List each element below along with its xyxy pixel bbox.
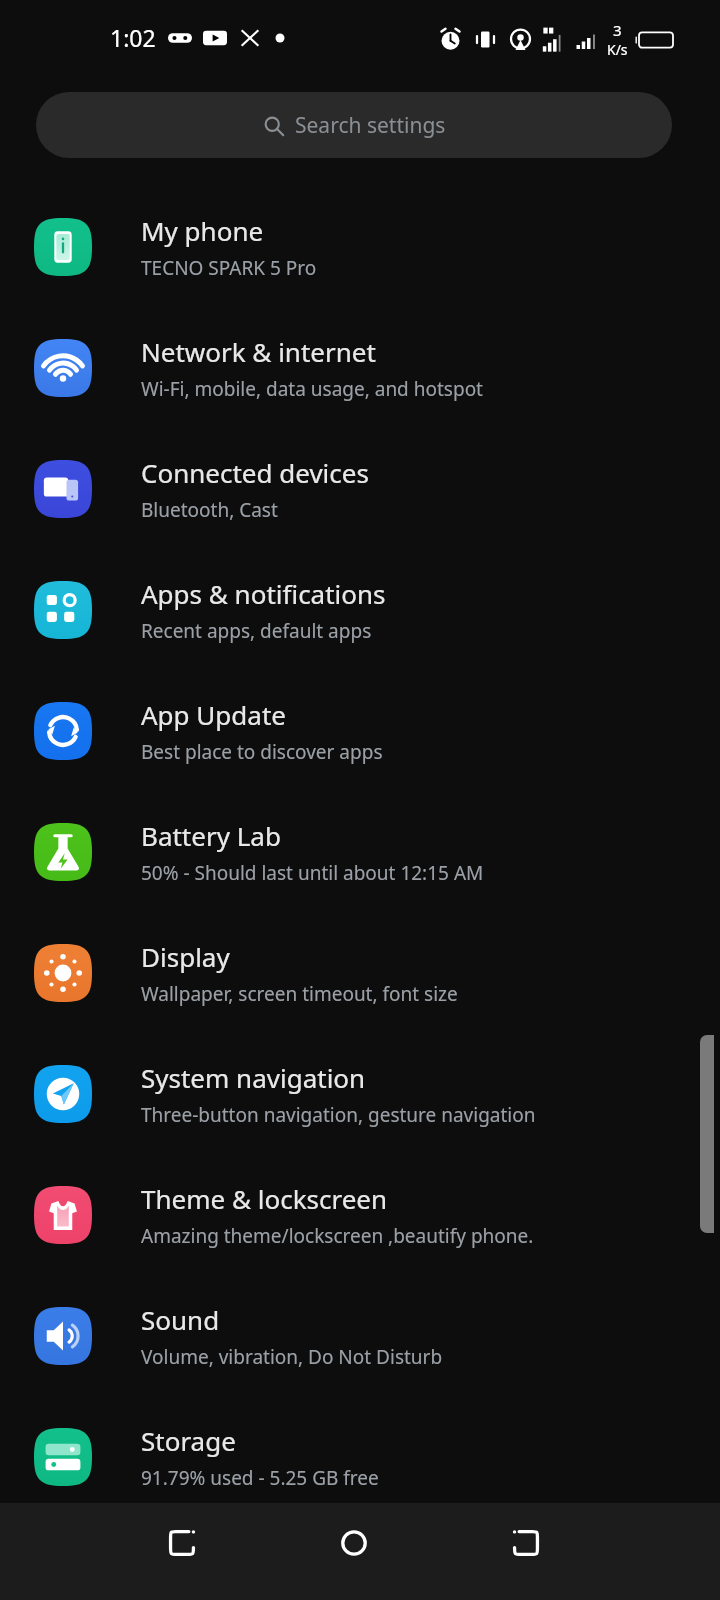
staticText: System navigation bbox=[141, 1060, 366, 1095]
button[interactable]: Apps & notifications bbox=[0, 549, 720, 670]
button[interactable]: App Update bbox=[0, 670, 720, 791]
button[interactable]: Storage bbox=[0, 1396, 720, 1517]
staticText: 91.79% used - 5.25 GB free bbox=[141, 1465, 379, 1491]
staticText: App Update bbox=[141, 697, 286, 732]
button[interactable]: Battery Lab bbox=[0, 791, 720, 912]
staticText: Bluetooth, Cast bbox=[141, 497, 278, 523]
staticText: Three-button navigation, gesture navigat… bbox=[141, 1102, 536, 1128]
button[interactable]: Search settings bbox=[36, 92, 672, 158]
button[interactable]: Sound bbox=[0, 1275, 720, 1396]
staticText: Best place to discover apps bbox=[141, 739, 383, 765]
button[interactable]: Network & internet bbox=[0, 307, 720, 428]
staticText: 3 bbox=[613, 20, 622, 40]
staticText: Sound bbox=[141, 1302, 220, 1337]
button[interactable]: Recent apps bbox=[152, 1513, 212, 1573]
staticText: Theme & lockscreen bbox=[141, 1181, 388, 1216]
button[interactable]: My phone bbox=[0, 186, 720, 307]
staticText: Search settings bbox=[295, 111, 446, 140]
staticText: Apps & notifications bbox=[141, 576, 386, 611]
staticText: Connected devices bbox=[141, 455, 369, 490]
staticText: Wallpaper, screen timeout, font size bbox=[141, 981, 458, 1007]
staticText: TECNO SPARK 5 Pro bbox=[141, 255, 317, 281]
button[interactable]: Theme & lockscreen bbox=[0, 1154, 720, 1275]
staticText: Amazing theme/lockscreen ,beautify phone… bbox=[141, 1223, 534, 1249]
staticText: Wi-Fi, mobile, data usage, and hotspot bbox=[141, 376, 483, 402]
staticText: Storage bbox=[141, 1423, 236, 1458]
button[interactable]: Display bbox=[0, 912, 720, 1033]
staticText: 1:02 bbox=[110, 22, 156, 53]
button[interactable]: System navigation bbox=[0, 1033, 720, 1154]
button[interactable]: Connected devices bbox=[0, 428, 720, 549]
staticText: Recent apps, default apps bbox=[141, 618, 372, 644]
staticText: Network & internet bbox=[141, 334, 376, 369]
staticText: Battery Lab bbox=[141, 818, 281, 853]
button[interactable]: Back bbox=[496, 1513, 556, 1573]
staticText: Display bbox=[141, 939, 230, 974]
button[interactable]: Home bbox=[324, 1513, 384, 1573]
staticText: My phone bbox=[141, 213, 264, 248]
staticText: K/s bbox=[607, 40, 628, 59]
staticText: 50% - Should last until about 12:15 AM bbox=[141, 860, 484, 886]
staticText: Volume, vibration, Do Not Disturb bbox=[141, 1344, 443, 1370]
